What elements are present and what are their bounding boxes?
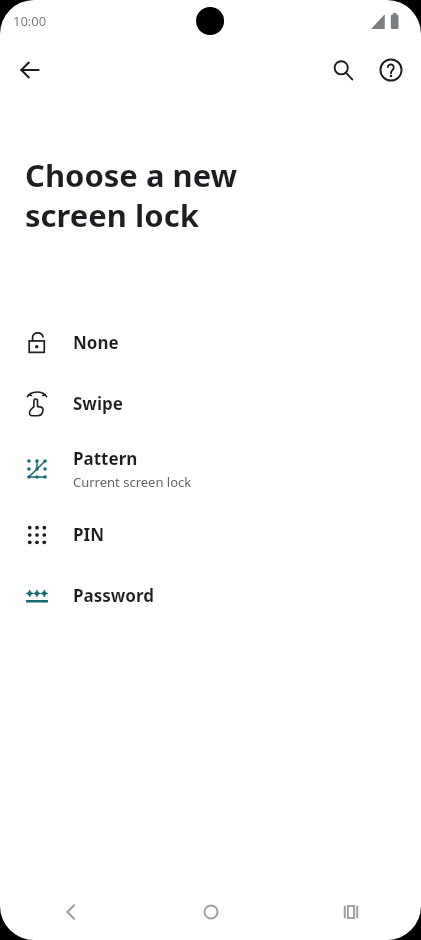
staticText: 10:00: [13, 12, 47, 30]
staticText: PIN: [73, 523, 104, 546]
button[interactable]: Back: [0, 884, 141, 940]
button[interactable]: Swipe: [0, 373, 421, 434]
button[interactable]: None: [0, 312, 421, 373]
staticText: Swipe: [73, 392, 123, 415]
button[interactable]: PIN: [0, 504, 421, 565]
button[interactable]: Password: [0, 565, 421, 626]
button[interactable]: Search: [319, 46, 367, 94]
staticText: Pattern: [73, 447, 138, 470]
button[interactable]: Back: [6, 46, 54, 94]
button[interactable]: Home: [141, 884, 281, 940]
staticText: None: [73, 331, 119, 354]
staticText: Password: [73, 584, 154, 607]
staticText: Current screen lock: [73, 473, 192, 491]
button[interactable]: Recent apps: [281, 884, 421, 940]
staticText: Choose a new screen lock: [25, 154, 238, 236]
button[interactable]: Pattern: [0, 434, 421, 504]
button[interactable]: Help: [367, 46, 415, 94]
